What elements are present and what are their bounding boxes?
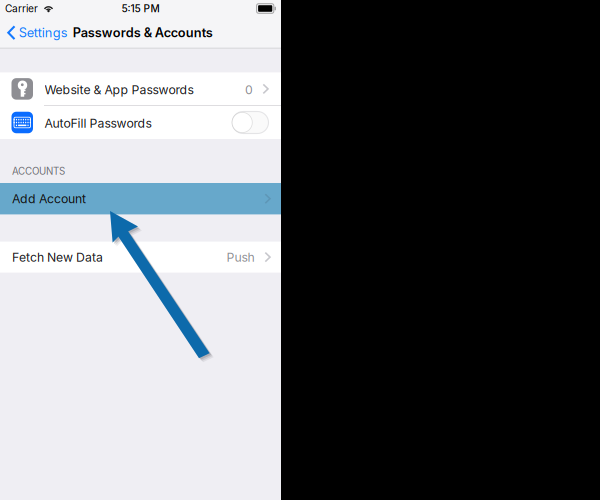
button[interactable]: AutoFill Passwords (0, 106, 281, 139)
staticText: AutoFill Passwords (44, 116, 151, 131)
staticText: Settings (19, 25, 68, 40)
staticText: Passwords & Accounts (73, 25, 213, 40)
button[interactable]: Website & App Passwords (0, 72, 281, 105)
staticText: Push (226, 250, 254, 265)
staticText: Add Account (12, 191, 86, 206)
button[interactable]: Add Account (0, 183, 281, 214)
button[interactable]: Fetch New Data (0, 242, 281, 273)
staticText: Website & App Passwords (44, 82, 193, 97)
staticText: Carrier (5, 2, 38, 15)
staticText: 5:15 PM (121, 2, 159, 15)
staticText: 0 (245, 82, 253, 97)
staticText: Fetch New Data (12, 250, 103, 265)
button[interactable]: Settings (0, 18, 72, 47)
staticText: ACCOUNTS (12, 165, 65, 177)
